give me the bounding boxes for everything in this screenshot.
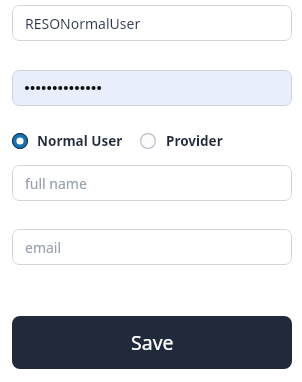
staticText: Normal User xyxy=(37,132,123,150)
button[interactable]: email xyxy=(12,229,292,265)
staticText: RESONormalUser xyxy=(25,14,141,33)
button[interactable]: Provider xyxy=(140,132,223,150)
button[interactable]: Password xyxy=(12,70,292,106)
staticText: email xyxy=(25,238,62,257)
staticText: Save xyxy=(131,329,174,356)
button[interactable]: Username xyxy=(12,5,292,41)
staticText: full name xyxy=(25,174,87,193)
other: Normal User xyxy=(12,133,28,149)
button[interactable]: Save xyxy=(12,316,292,369)
button[interactable]: full name xyxy=(12,165,292,201)
other: Provider xyxy=(140,133,156,149)
staticText: Provider xyxy=(166,132,223,150)
button[interactable]: Normal User xyxy=(12,132,123,150)
